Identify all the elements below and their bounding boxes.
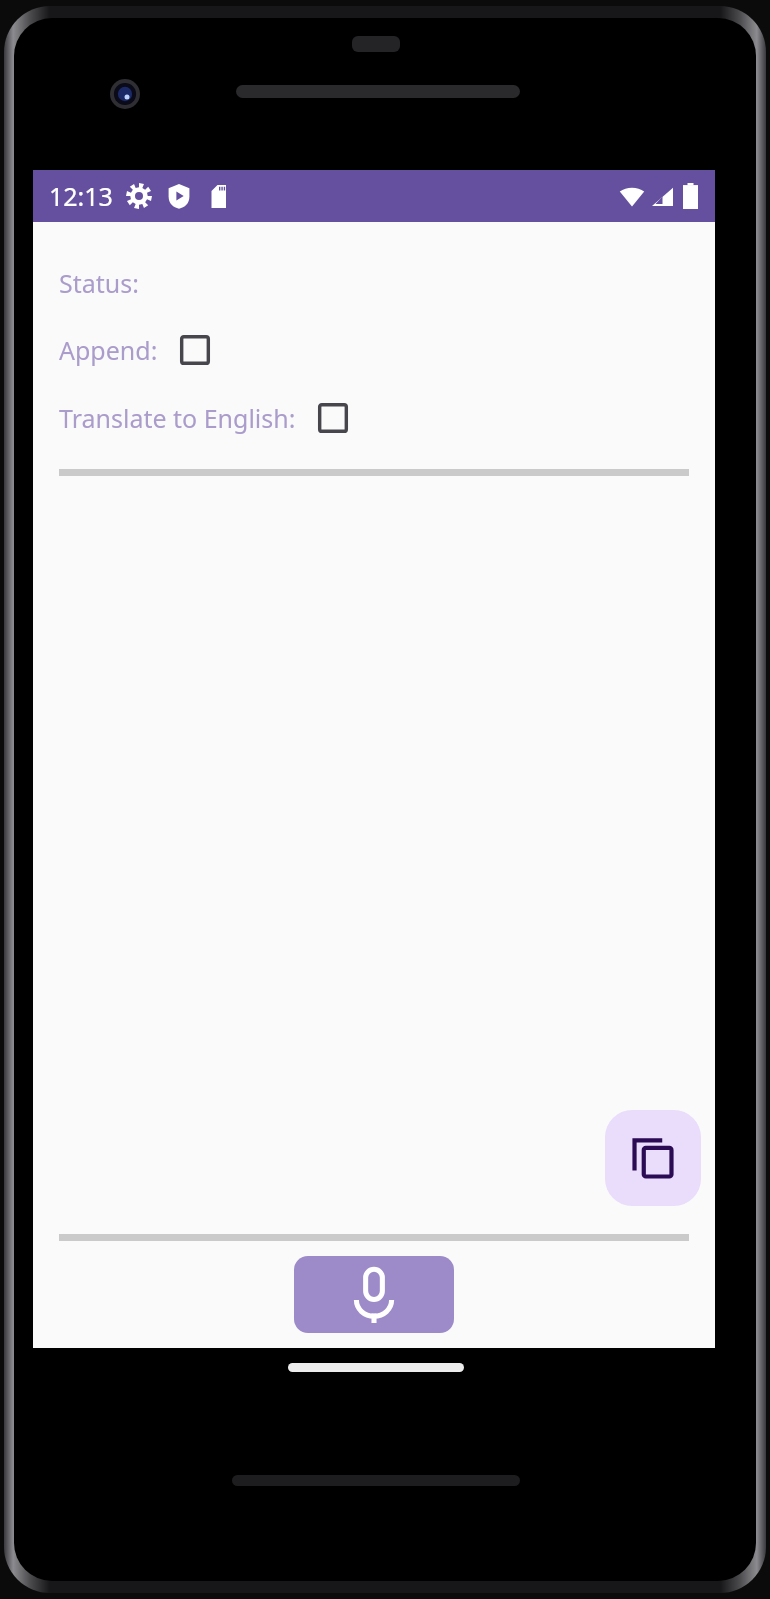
- button[interactable]: Copy to clipboard: [605, 1110, 701, 1206]
- button[interactable]: Checkbox: [315, 400, 351, 436]
- staticText: 12:13: [49, 179, 113, 213]
- button[interactable]: Record speech: [294, 1256, 454, 1333]
- staticText: Append:: [59, 333, 158, 367]
- button[interactable]: Checkbox: [177, 332, 213, 368]
- button[interactable]: Append:: [33, 332, 715, 368]
- staticText: Status:: [59, 266, 139, 300]
- button[interactable]: Translate to English:: [33, 400, 715, 436]
- staticText: Translate to English:: [59, 401, 296, 435]
